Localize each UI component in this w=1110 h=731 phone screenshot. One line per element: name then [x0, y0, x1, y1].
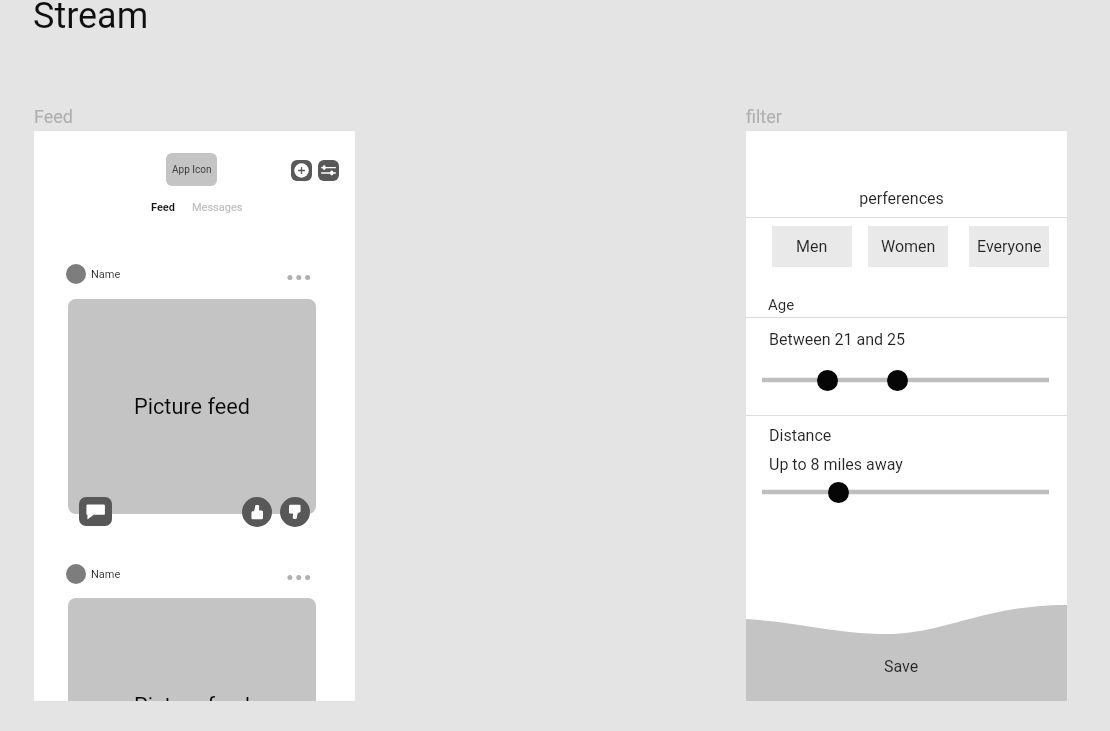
staticText: Picture feed: [134, 394, 250, 419]
staticText: perferences: [746, 189, 1062, 208]
button[interactable]: Feed: [151, 201, 176, 214]
button[interactable]: More options: [282, 570, 314, 584]
staticText: Messages: [192, 201, 243, 214]
button[interactable]: More options: [282, 270, 314, 284]
staticText: filter: [746, 106, 782, 127]
staticText: Name: [91, 568, 121, 581]
staticText: Stream: [33, 0, 149, 37]
button[interactable]: Slider handle: [828, 482, 849, 503]
staticText: App Icon: [172, 164, 212, 176]
button[interactable]: Slider handle: [887, 370, 908, 391]
staticText: Everyone: [977, 237, 1042, 256]
button[interactable]: Filter settings: [318, 160, 339, 181]
button[interactable]: Slider handle: [817, 370, 838, 391]
button[interactable]: Women: [868, 226, 948, 267]
staticText: Feed: [34, 106, 74, 127]
staticText: Save: [884, 657, 919, 676]
button[interactable]: Men: [772, 226, 852, 267]
button[interactable]: Like: [242, 497, 272, 527]
button[interactable]: Comment: [79, 497, 112, 526]
staticText: Age: [768, 296, 795, 314]
staticText: Picture feed: [134, 693, 250, 701]
staticText: Name: [91, 268, 121, 281]
staticText: Women: [881, 237, 936, 256]
staticText: Distance: [769, 426, 832, 445]
staticText: Feed: [151, 201, 176, 214]
button[interactable]: Picture feed: [68, 598, 316, 701]
button[interactable]: Dislike: [280, 497, 310, 527]
button[interactable]: App Icon: [166, 153, 217, 186]
button[interactable]: Add post: [291, 160, 312, 181]
staticText: Between 21 and 25: [769, 330, 905, 349]
button[interactable]: Everyone: [969, 226, 1049, 267]
button[interactable]: Picture feed: [68, 299, 316, 514]
button[interactable]: Messages: [192, 201, 243, 214]
staticText: Up to 8 miles away: [769, 455, 903, 474]
button[interactable]: Save: [746, 634, 1062, 699]
staticText: Men: [796, 237, 828, 256]
